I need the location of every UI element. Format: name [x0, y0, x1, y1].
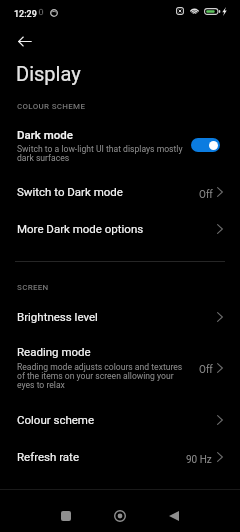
button[interactable]: Open	[209, 446, 231, 468]
button[interactable]	[0, 177, 240, 205]
staticText: Reading mode adjusts colours and texture…	[17, 362, 183, 390]
button[interactable]: Open	[209, 357, 231, 379]
staticText: 90 Hz	[186, 454, 212, 466]
staticText: Off	[199, 364, 213, 376]
button[interactable]	[0, 302, 240, 330]
button[interactable]: Open	[209, 181, 231, 203]
button[interactable]	[0, 338, 240, 394]
button[interactable]: Open	[209, 409, 231, 431]
button[interactable]: Recents	[46, 496, 86, 532]
staticText: 12:29	[14, 9, 37, 20]
staticText: COLOUR SCHEME	[17, 102, 86, 111]
staticText: Brightness level	[17, 310, 98, 323]
button[interactable]	[0, 405, 240, 433]
button[interactable]: Back navigation	[154, 496, 194, 532]
staticText: Switch to a low-light UI that displays m…	[17, 144, 183, 163]
staticText: Dark mode	[17, 128, 73, 141]
staticText: Reading mode	[17, 345, 91, 358]
staticText: Refresh rate	[17, 450, 79, 463]
button[interactable]: Open	[209, 306, 231, 328]
staticText: Colour scheme	[17, 413, 95, 426]
button[interactable]	[0, 214, 240, 242]
staticText: SCREEN	[17, 283, 49, 292]
button[interactable]	[0, 442, 240, 470]
button[interactable]: Back	[12, 28, 38, 54]
staticText: Off	[199, 189, 213, 201]
staticText: More Dark mode options	[17, 222, 144, 235]
staticText: Switch to Dark mode	[17, 185, 123, 198]
button[interactable]	[0, 122, 240, 166]
button[interactable]: Home	[100, 496, 140, 532]
button[interactable]: Open	[209, 218, 231, 240]
staticText: Display	[16, 62, 81, 85]
button[interactable]: Dark mode toggle	[191, 138, 220, 152]
